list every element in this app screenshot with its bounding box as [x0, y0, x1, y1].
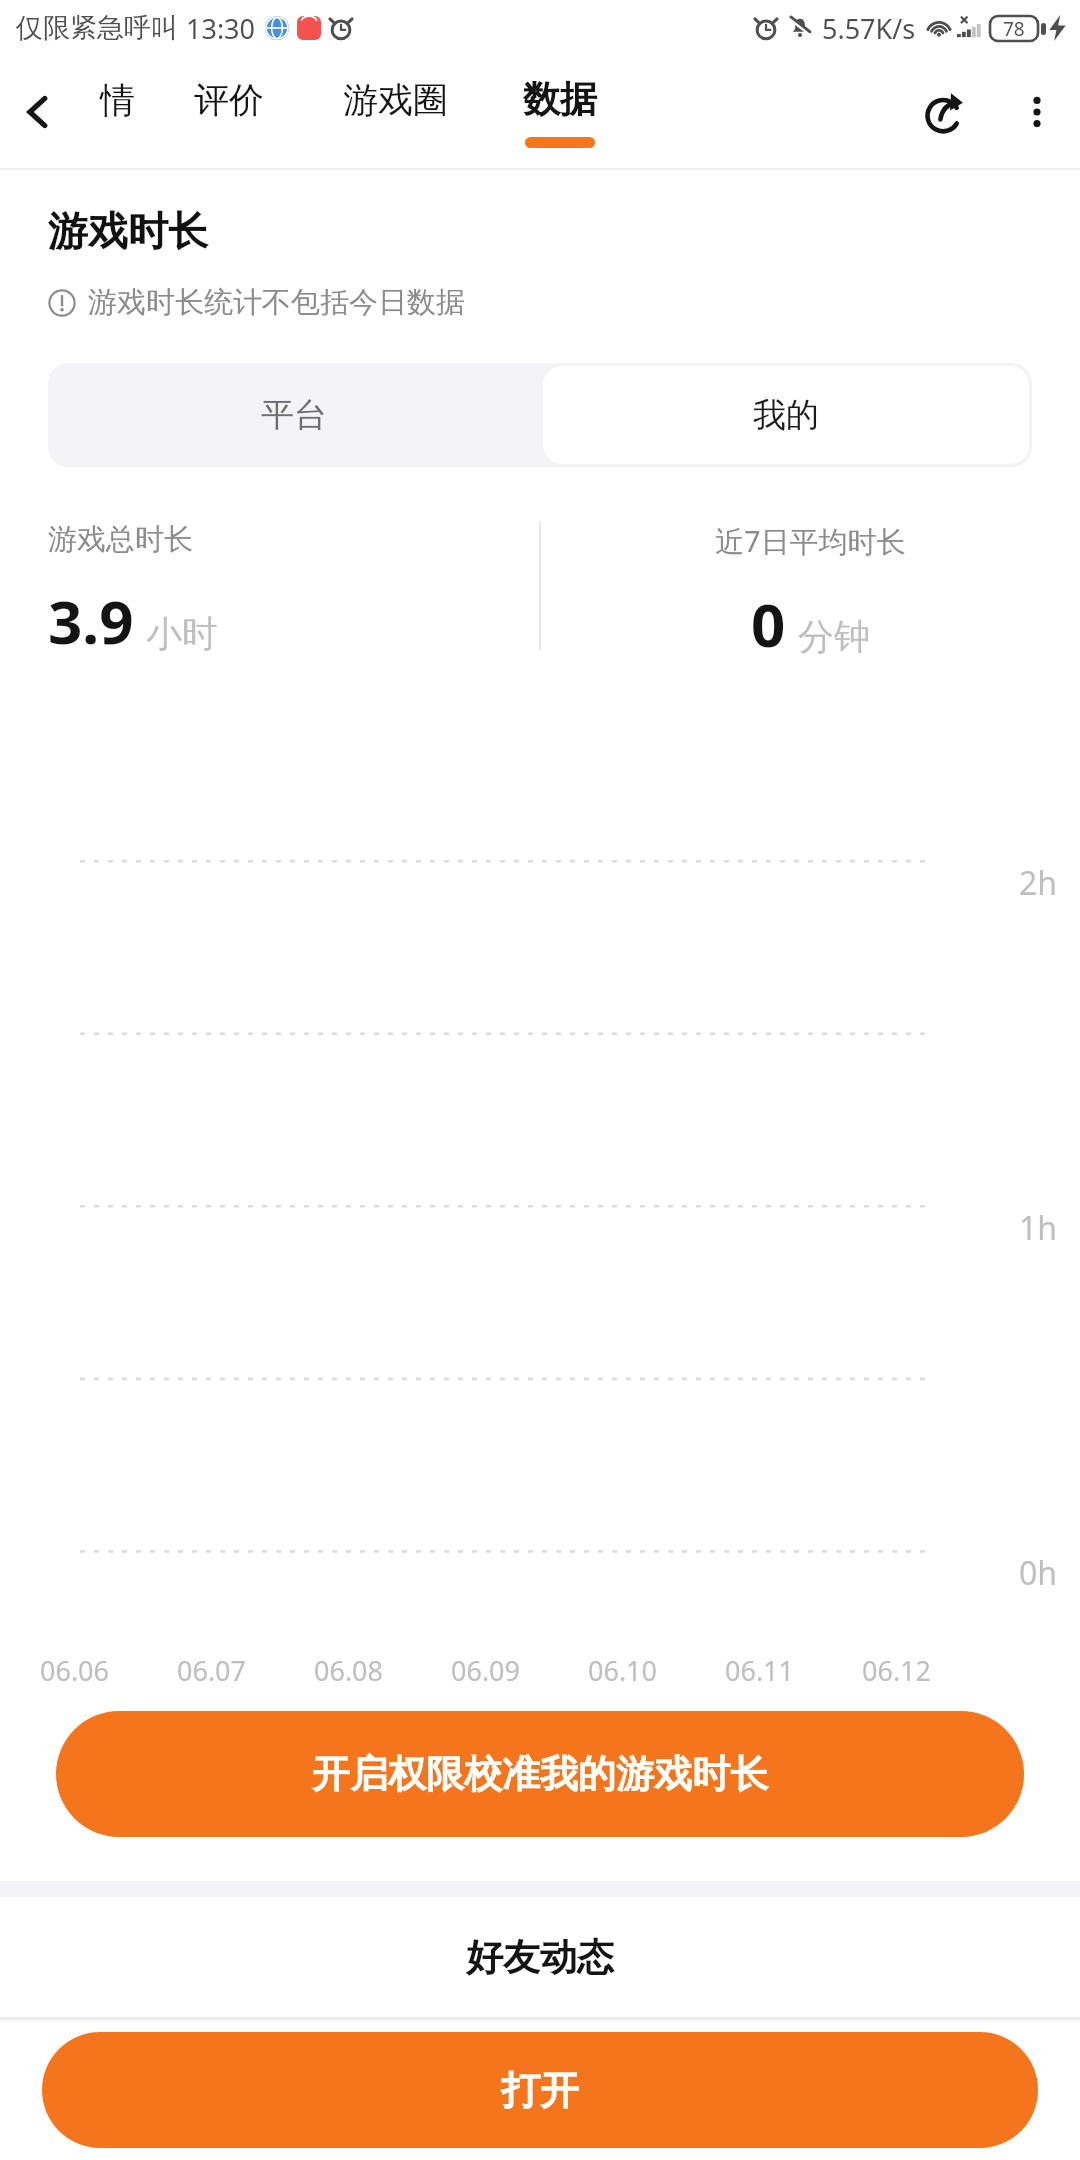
staticText: 06.10: [588, 1652, 658, 1689]
staticText: 06.09: [451, 1652, 521, 1689]
staticText: 2h: [1019, 861, 1058, 905]
staticText: 数据: [523, 76, 597, 123]
staticText: 分钟: [798, 614, 870, 659]
button[interactable]: 情: [76, 56, 158, 168]
staticText: 0: [751, 583, 786, 665]
button[interactable]: 平台: [48, 363, 540, 467]
button[interactable]: 数据: [490, 56, 630, 168]
staticText: 小时: [146, 611, 218, 656]
staticText: 打开: [501, 2066, 579, 2115]
staticText: 游戏圈: [343, 78, 448, 122]
staticText: 06.11: [725, 1652, 795, 1689]
staticText: 3.9: [48, 580, 134, 662]
staticText: 78: [1003, 16, 1025, 42]
staticText: 06.07: [177, 1652, 247, 1689]
staticText: 情: [100, 78, 135, 122]
staticText: 游戏时长: [48, 206, 208, 256]
staticText: 游戏时长统计不包括今日数据: [88, 284, 465, 321]
staticText: 评价: [194, 78, 264, 122]
staticText: 06.08: [314, 1652, 384, 1689]
staticText: 游戏总时长: [48, 521, 193, 558]
staticText: 好友动态: [466, 1934, 614, 1981]
staticText: 仅限紧急呼叫: [16, 11, 178, 45]
staticText: 13:30: [186, 10, 256, 47]
staticText: 平台: [261, 394, 327, 436]
staticText: 06.06: [40, 1652, 110, 1689]
staticText: 开启权限校准我的游戏时长: [312, 1750, 768, 1798]
button[interactable]: Share: [896, 56, 994, 168]
staticText: 0h: [1019, 1551, 1058, 1595]
button[interactable]: Back: [0, 56, 76, 168]
button[interactable]: 游戏圈: [300, 56, 490, 168]
button[interactable]: 开启权限校准我的游戏时长: [56, 1711, 1024, 1837]
button[interactable]: 我的: [543, 366, 1029, 464]
button[interactable]: 打开: [42, 2032, 1038, 2148]
button[interactable]: More options: [994, 56, 1080, 168]
staticText: 近7日平均时长: [715, 521, 906, 561]
button[interactable]: 评价: [158, 56, 300, 168]
staticText: 1h: [1019, 1206, 1058, 1250]
staticText: 我的: [753, 394, 819, 436]
staticText: 06.12: [862, 1652, 932, 1689]
staticText: 5.57K/s: [822, 10, 916, 47]
